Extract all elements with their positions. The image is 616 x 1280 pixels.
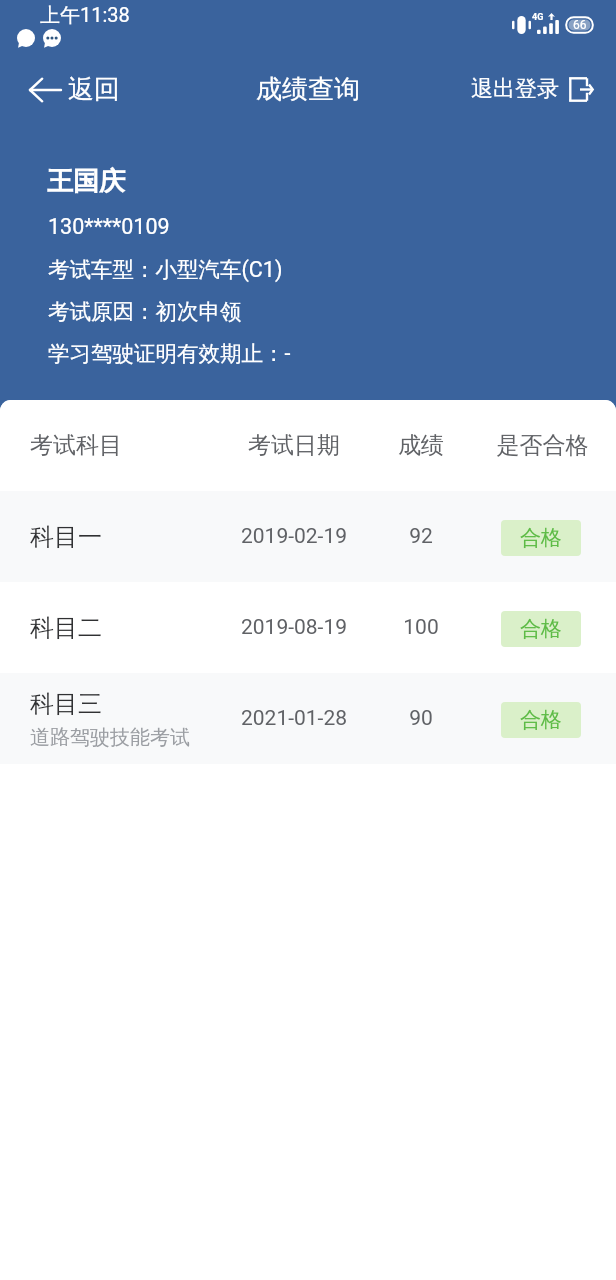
staticText: 66 [573, 18, 587, 32]
staticText: 成绩查询 [256, 73, 360, 106]
button[interactable]: 科目三 [0, 673, 616, 764]
staticText: 科目二 [30, 613, 102, 643]
staticText: 2019-02-19 [215, 524, 373, 549]
staticText: 成绩 [373, 431, 469, 460]
staticText: 合格 [520, 707, 562, 733]
button[interactable]: 返回 [0, 65, 132, 114]
staticText: 考试原因：初次申领 [48, 298, 242, 325]
staticText: 退出登录 [471, 75, 559, 103]
staticText: 2019-08-19 [215, 615, 373, 640]
staticText: 返回 [68, 73, 120, 106]
staticText: 合格 [520, 525, 562, 551]
staticText: 道路驾驶技能考试 [30, 725, 190, 750]
staticText: 考试日期 [215, 431, 373, 460]
staticText: 科目三 [30, 689, 102, 719]
staticText: 科目一 [30, 522, 102, 552]
staticText: 4G [532, 12, 544, 23]
staticText: 100 [373, 615, 469, 640]
other: 返回 [29, 78, 62, 102]
staticText: 考试科目 [30, 431, 215, 460]
staticText: 92 [373, 524, 469, 549]
staticText: 2021-01-28 [215, 706, 373, 731]
staticText: 合格 [520, 616, 562, 642]
button[interactable]: 科目一 [0, 491, 616, 582]
button[interactable]: 退出登录 [459, 67, 616, 111]
staticText: 上午11:38 [40, 3, 130, 28]
staticText: 90 [373, 706, 469, 731]
staticText: 学习驾驶证明有效期止：- [48, 340, 291, 367]
other: 退出登录 [569, 77, 594, 102]
staticText: 王国庆 [47, 165, 125, 198]
staticText: 130****0109 [48, 214, 170, 239]
button[interactable]: 科目二 [0, 582, 616, 673]
staticText: 考试车型：小型汽车(C1) [48, 256, 283, 283]
staticText: 是否合格 [469, 431, 616, 460]
